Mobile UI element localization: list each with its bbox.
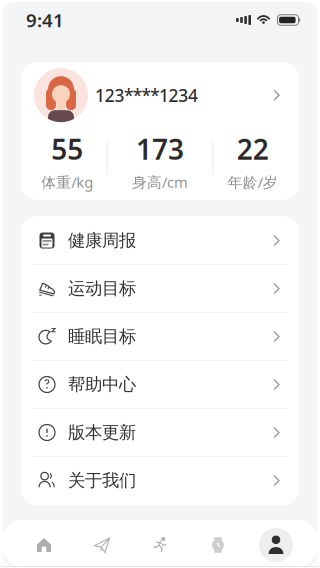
staticText: 123****1234 [95, 84, 198, 107]
button[interactable]: 消息 [73, 537, 131, 553]
staticText: 帮助中心 [68, 374, 136, 395]
button[interactable]: 我的 [247, 528, 305, 562]
button[interactable]: 运动 [131, 537, 189, 553]
staticText: 运动目标 [68, 278, 136, 299]
staticText: 关于我们 [68, 470, 136, 491]
staticText: 22 [237, 130, 269, 167]
button[interactable]: 健康周报 [21, 217, 299, 264]
staticText: 55 [51, 130, 83, 167]
staticText: 年龄/岁 [228, 172, 278, 192]
button[interactable]: 运动目标 [21, 265, 299, 312]
button[interactable]: 睡眠目标 [21, 313, 299, 360]
staticText: 173 [136, 130, 184, 167]
staticText: 体重/kg [41, 172, 93, 192]
button[interactable]: 设备 [189, 537, 247, 553]
staticText: 9:41 [26, 8, 64, 32]
staticText: 健康周报 [68, 230, 136, 251]
button[interactable]: 首页 [15, 537, 73, 553]
button[interactable]: 关于我们 [21, 457, 299, 504]
staticText: 身高/cm [132, 172, 188, 192]
staticText: 版本更新 [68, 422, 136, 443]
staticText: 睡眠目标 [68, 326, 136, 347]
button[interactable]: 123****1234 [21, 58, 299, 122]
button[interactable]: 帮助中心 [21, 361, 299, 408]
button[interactable]: 版本更新 [21, 409, 299, 456]
